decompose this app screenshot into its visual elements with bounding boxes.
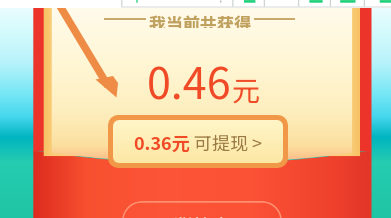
button[interactable]: 邀请好友 xyxy=(122,201,282,218)
staticText: 0.36元 xyxy=(134,129,190,155)
staticText: 0.46 xyxy=(147,49,231,111)
button[interactable]: 0.36元 xyxy=(113,120,283,163)
staticText: 元 xyxy=(232,69,261,110)
staticText: 可提现 > xyxy=(190,129,263,155)
staticText: 我当前共获得 xyxy=(149,10,251,28)
staticText: 邀请好友 xyxy=(174,213,230,218)
